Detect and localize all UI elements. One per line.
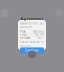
button[interactable]: Continue [20, 47, 44, 53]
staticText: $4.99 [35, 33, 44, 36]
staticText: Plan [20, 30, 26, 33]
staticText: Agreement [20, 16, 43, 21]
staticText: Continue [25, 49, 39, 52]
staticText: Review before you continue [19, 22, 44, 29]
staticText: Oct 7 [37, 36, 44, 39]
staticText: Price [20, 33, 27, 36]
staticText: Cancel anytime in Settings [20, 40, 44, 47]
staticText: Renews [20, 36, 30, 39]
staticText: Monthly [33, 30, 44, 33]
